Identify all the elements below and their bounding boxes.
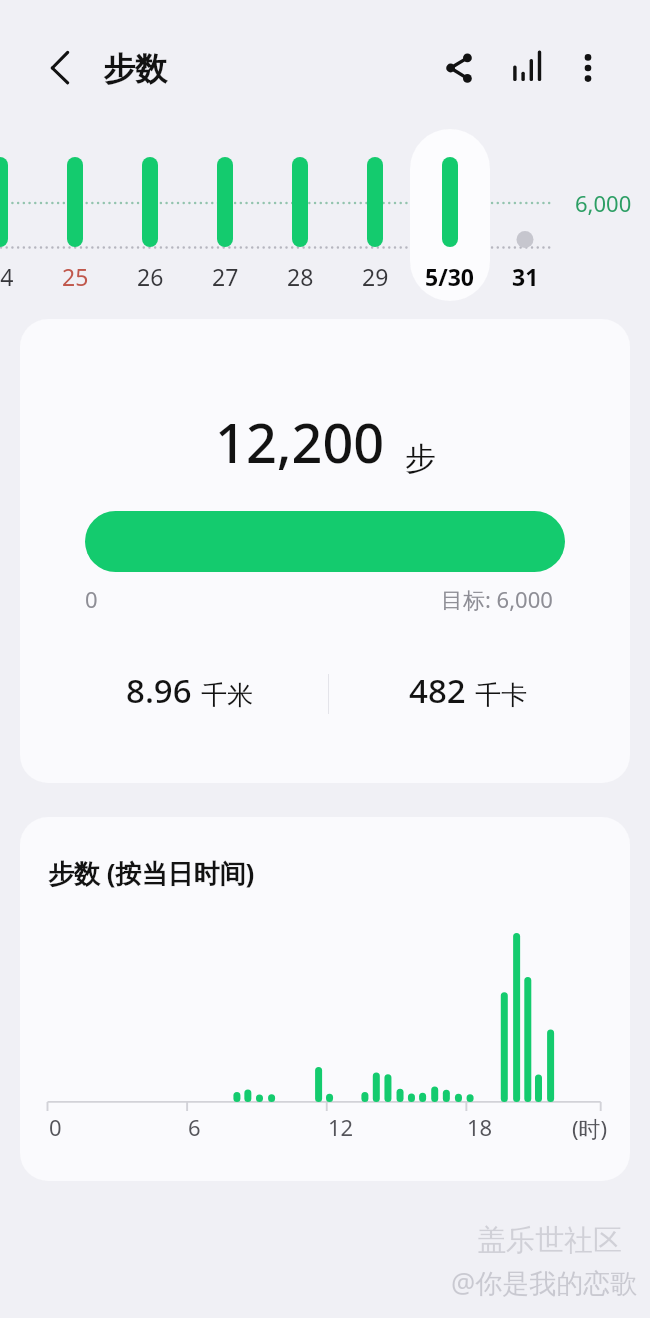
staticText: @你是我的恋歌 (451, 1264, 638, 1301)
button[interactable]: More options (560, 40, 616, 96)
staticText: 6,000 (575, 188, 632, 218)
button[interactable]: Chart (499, 40, 555, 96)
staticText: (时) (572, 1113, 608, 1143)
button[interactable]: Back (35, 43, 85, 93)
staticText: 24 (0, 261, 14, 292)
staticText: 31 (512, 261, 539, 292)
staticText: 26 (137, 261, 164, 292)
staticText: 0 (49, 1112, 62, 1142)
staticText: 千卡 (475, 679, 527, 712)
staticText: 27 (212, 261, 239, 292)
staticText: 29 (362, 261, 389, 292)
staticText: 12 (328, 1112, 354, 1142)
staticText: 步数 (103, 49, 167, 89)
staticText: 千米 (201, 679, 253, 712)
staticText: 482 (409, 668, 466, 713)
staticText: 目标: 6,000 (441, 584, 553, 614)
staticText: 步数 (按当日时间) (48, 855, 255, 891)
staticText: 步 (405, 439, 436, 478)
staticText: 8.96 (126, 668, 192, 713)
staticText: 28 (287, 261, 314, 292)
staticText: 5/30 (425, 261, 475, 292)
button[interactable]: Selected day 5/30 (410, 129, 490, 301)
staticText: 18 (467, 1112, 493, 1142)
staticText: 12,200 (215, 405, 385, 479)
button[interactable]: Share (431, 40, 487, 96)
staticText: 0 (85, 584, 98, 614)
staticText: 盖乐世社区 (477, 1222, 622, 1259)
staticText: 6 (188, 1112, 201, 1142)
staticText: 25 (62, 261, 89, 292)
